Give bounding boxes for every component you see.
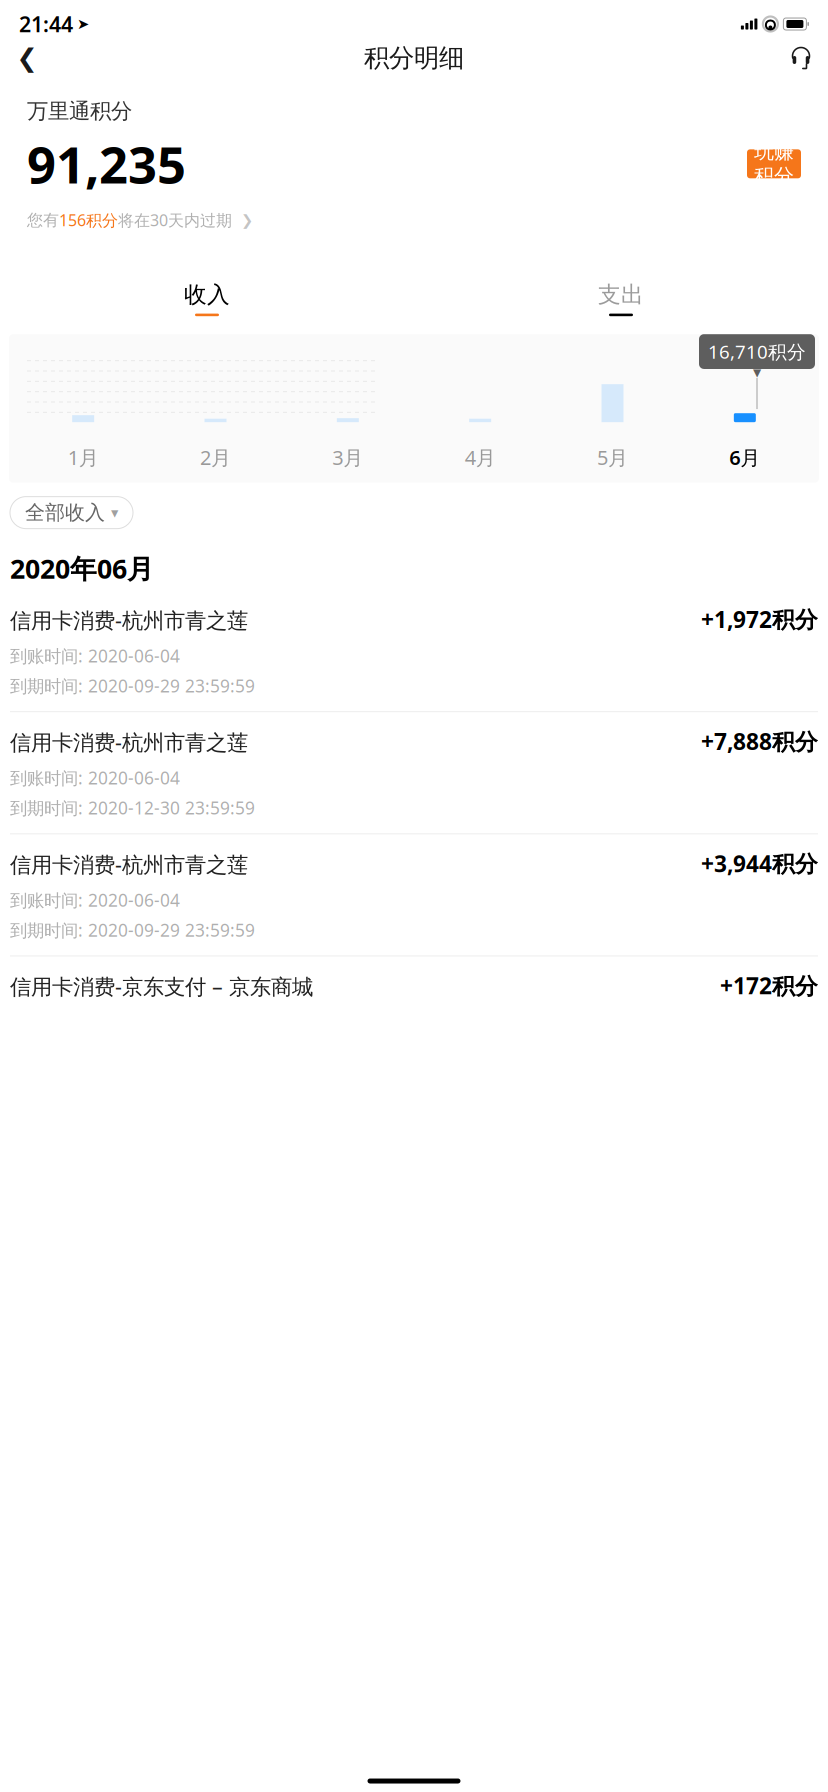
button[interactable]: 信用卡消费-杭州市青之莲 <box>10 590 818 711</box>
staticText: 6月 <box>729 444 760 471</box>
staticText: ❮ <box>16 44 37 72</box>
staticText: ❯ <box>236 212 253 228</box>
button[interactable]: 信用卡消费-京东支付 – 京东商城 <box>10 956 818 1015</box>
staticText: 支出 <box>598 281 644 308</box>
staticText: +7,888积分 <box>701 726 818 756</box>
button[interactable]: Customer service <box>779 36 823 80</box>
staticText: ▼ <box>753 366 761 379</box>
staticText: 到期时间: 2020-09-29 23:59:59 <box>10 674 255 697</box>
staticText: 积分明细 <box>364 42 464 73</box>
staticText: ▾ <box>111 504 118 521</box>
staticText: 156积分 <box>59 209 118 231</box>
staticText: 到账时间: 2020-06-04 <box>10 766 180 789</box>
staticText: 91,235 <box>27 130 186 197</box>
staticText: 信用卡消费-京东支付 – 京东商城 <box>10 972 313 1000</box>
staticText: 玩赚积分 <box>754 139 794 188</box>
staticText: ➤ <box>77 16 89 32</box>
staticText: 2020年06月 <box>10 551 154 586</box>
staticText: 全部收入 <box>25 500 105 525</box>
staticText: 信用卡消费-杭州市青之莲 <box>10 606 248 634</box>
staticText: 4月 <box>465 444 496 471</box>
staticText: 21:44 <box>19 10 73 38</box>
staticText: 将在30天内过期 <box>118 209 232 231</box>
staticText: 到期时间: 2020-09-29 23:59:59 <box>10 918 255 941</box>
button[interactable]: 信用卡消费-杭州市青之莲 <box>10 712 818 833</box>
staticText: 到账时间: 2020-06-04 <box>10 888 180 911</box>
staticText: 信用卡消费-杭州市青之莲 <box>10 850 248 878</box>
button[interactable]: Back <box>5 36 49 80</box>
button[interactable]: 您有 <box>27 197 801 247</box>
staticText: +1,972积分 <box>701 604 818 634</box>
staticText: 万里通积分 <box>27 98 132 124</box>
staticText: +3,944积分 <box>701 848 818 878</box>
staticText: 收入 <box>184 281 230 308</box>
staticText: 您有 <box>27 210 59 230</box>
staticText: 信用卡消费-杭州市青之莲 <box>10 728 248 756</box>
button[interactable]: 信用卡消费-杭州市青之莲 <box>10 834 818 955</box>
staticText: 2月 <box>200 444 231 471</box>
staticText: 到期时间: 2020-12-30 23:59:59 <box>10 796 255 819</box>
button[interactable]: 玩赚积分 <box>747 149 801 178</box>
staticText: 3月 <box>332 444 363 471</box>
staticText: 16,710积分 <box>708 339 806 364</box>
staticText: 5月 <box>597 444 628 471</box>
staticText: 到账时间: 2020-06-04 <box>10 644 180 667</box>
staticText: +172积分 <box>720 970 818 1001</box>
button[interactable]: 收入 <box>0 269 414 328</box>
staticText: 1月 <box>68 444 99 471</box>
button[interactable]: 支出 <box>414 269 828 328</box>
button[interactable]: 全部收入 <box>10 497 133 529</box>
